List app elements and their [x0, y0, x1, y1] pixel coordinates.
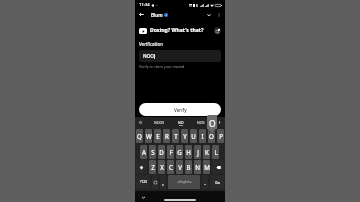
- button[interactable]: Backspace: [212, 160, 224, 174]
- staticText: T: [174, 132, 178, 140]
- button[interactable]: Verify: [139, 103, 221, 116]
- button[interactable]: Expand: [204, 10, 213, 19]
- button[interactable]: B: [185, 160, 192, 174]
- staticText: G: [177, 148, 182, 156]
- button[interactable]: R: [163, 129, 170, 143]
- staticText: M: [204, 163, 210, 171]
- button[interactable]: H: [185, 145, 192, 159]
- staticText: D: [159, 148, 164, 156]
- staticText: H: [186, 148, 191, 156]
- staticText: O: [209, 132, 214, 140]
- button[interactable]: NOO: [139, 50, 221, 62]
- staticText: Blum: [151, 12, 163, 18]
- staticText: P: [219, 132, 223, 140]
- button[interactable]: Keyboard settings: [138, 120, 143, 125]
- button[interactable]: A: [140, 145, 147, 159]
- staticText: Verify to claim your reward: [139, 64, 185, 69]
- button[interactable]: N: [194, 160, 201, 174]
- staticText: Doxing? What's that?: [150, 27, 204, 34]
- staticText: R: [165, 132, 169, 140]
- staticText: Y: [183, 132, 187, 140]
- staticText: Go: [215, 180, 220, 185]
- staticText: S: [151, 148, 155, 156]
- button[interactable]: G: [176, 145, 183, 159]
- staticText: NOOS: [154, 120, 165, 125]
- staticText: K: [205, 148, 209, 156]
- staticText: O: [209, 118, 216, 130]
- staticText: B: [186, 163, 191, 171]
- button[interactable]: .: [202, 175, 208, 189]
- button[interactable]: V: [176, 160, 183, 174]
- staticText: C: [169, 163, 173, 171]
- button[interactable]: Hide keyboard: [140, 194, 146, 200]
- button[interactable]: S: [149, 145, 156, 159]
- staticText: NO: [178, 120, 184, 125]
- button[interactable]: More options: [215, 11, 223, 19]
- staticText: N: [195, 163, 200, 171]
- staticText: 11:34: [139, 2, 150, 8]
- staticText: X: [160, 163, 164, 171]
- button[interactable]: ,: [160, 175, 166, 189]
- staticText: Q: [137, 132, 142, 140]
- button[interactable]: Z: [149, 160, 156, 174]
- staticText: Verification: [139, 41, 163, 47]
- button[interactable]: ◂ English ▸: [168, 175, 200, 189]
- button[interactable]: E: [154, 129, 161, 143]
- button[interactable]: Voice input: [217, 120, 222, 125]
- staticText: .: [204, 178, 206, 186]
- button[interactable]: O: [208, 129, 215, 143]
- staticText: ?123: [140, 180, 147, 184]
- button[interactable]: U: [190, 129, 197, 143]
- staticText: L: [214, 148, 218, 156]
- button[interactable]: ?123: [136, 175, 150, 189]
- staticText: I: [201, 132, 204, 140]
- staticText: ···: [155, 3, 158, 8]
- button[interactable]: C: [167, 160, 174, 174]
- button[interactable]: L: [212, 145, 219, 159]
- staticText: 6: [196, 3, 199, 8]
- staticText: J: [197, 148, 199, 156]
- button[interactable]: X: [158, 160, 165, 174]
- button[interactable]: Y: [181, 129, 188, 143]
- button[interactable]: W: [145, 129, 152, 143]
- staticText: U: [191, 132, 196, 140]
- button[interactable]: Q: [136, 129, 143, 143]
- staticText: Verify: [174, 107, 187, 113]
- staticText: ◂ English ▸: [177, 180, 192, 184]
- staticText: E: [156, 132, 160, 140]
- staticText: ,: [162, 178, 164, 186]
- button[interactable]: D: [158, 145, 165, 159]
- staticText: A: [142, 148, 146, 156]
- button[interactable]: M: [203, 160, 210, 174]
- staticText: NOS: [197, 120, 205, 125]
- button[interactable]: J: [194, 145, 201, 159]
- button[interactable]: I: [199, 129, 206, 143]
- button[interactable]: P: [217, 129, 224, 143]
- button[interactable]: T: [172, 129, 179, 143]
- button[interactable]: Back: [137, 10, 146, 19]
- button[interactable]: Shift: [136, 160, 147, 174]
- staticText: NOO: [143, 53, 154, 59]
- staticText: F: [169, 148, 173, 156]
- staticText: V: [178, 163, 182, 171]
- staticText: Z: [151, 163, 155, 171]
- button[interactable]: K: [203, 145, 210, 159]
- button[interactable]: Go: [210, 175, 224, 189]
- staticText: W: [146, 132, 152, 140]
- button[interactable]: Open link: [214, 27, 221, 34]
- button[interactable]: Emoji: [152, 175, 158, 189]
- button[interactable]: F: [167, 145, 174, 159]
